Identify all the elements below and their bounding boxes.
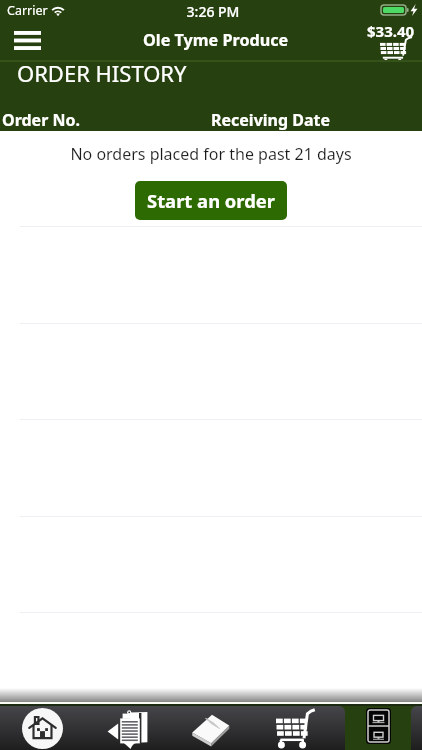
staticText: $33.40 — [367, 21, 415, 41]
button[interactable]: Cart — [254, 706, 338, 750]
staticText: Start an order — [147, 188, 276, 213]
staticText: Carrier — [7, 2, 48, 19]
button[interactable]: Cart — [358, 20, 422, 62]
staticText: No orders placed for the past 21 days — [0, 143, 422, 165]
staticText: Receiving Date — [211, 109, 331, 131]
staticText: Order No. — [2, 109, 80, 131]
button[interactable]: Home — [0, 706, 85, 750]
button[interactable]: Orders — [85, 706, 170, 750]
staticText: Ole Tyme Produce — [143, 29, 289, 51]
staticText: 3:26 PM — [2, 2, 422, 21]
button[interactable]: Start an order — [135, 181, 287, 220]
button[interactable]: Menu — [2, 21, 52, 59]
button[interactable]: Catalog — [170, 706, 254, 750]
button[interactable]: Displays — [338, 706, 422, 750]
staticText: ORDER HISTORY — [17, 58, 187, 88]
